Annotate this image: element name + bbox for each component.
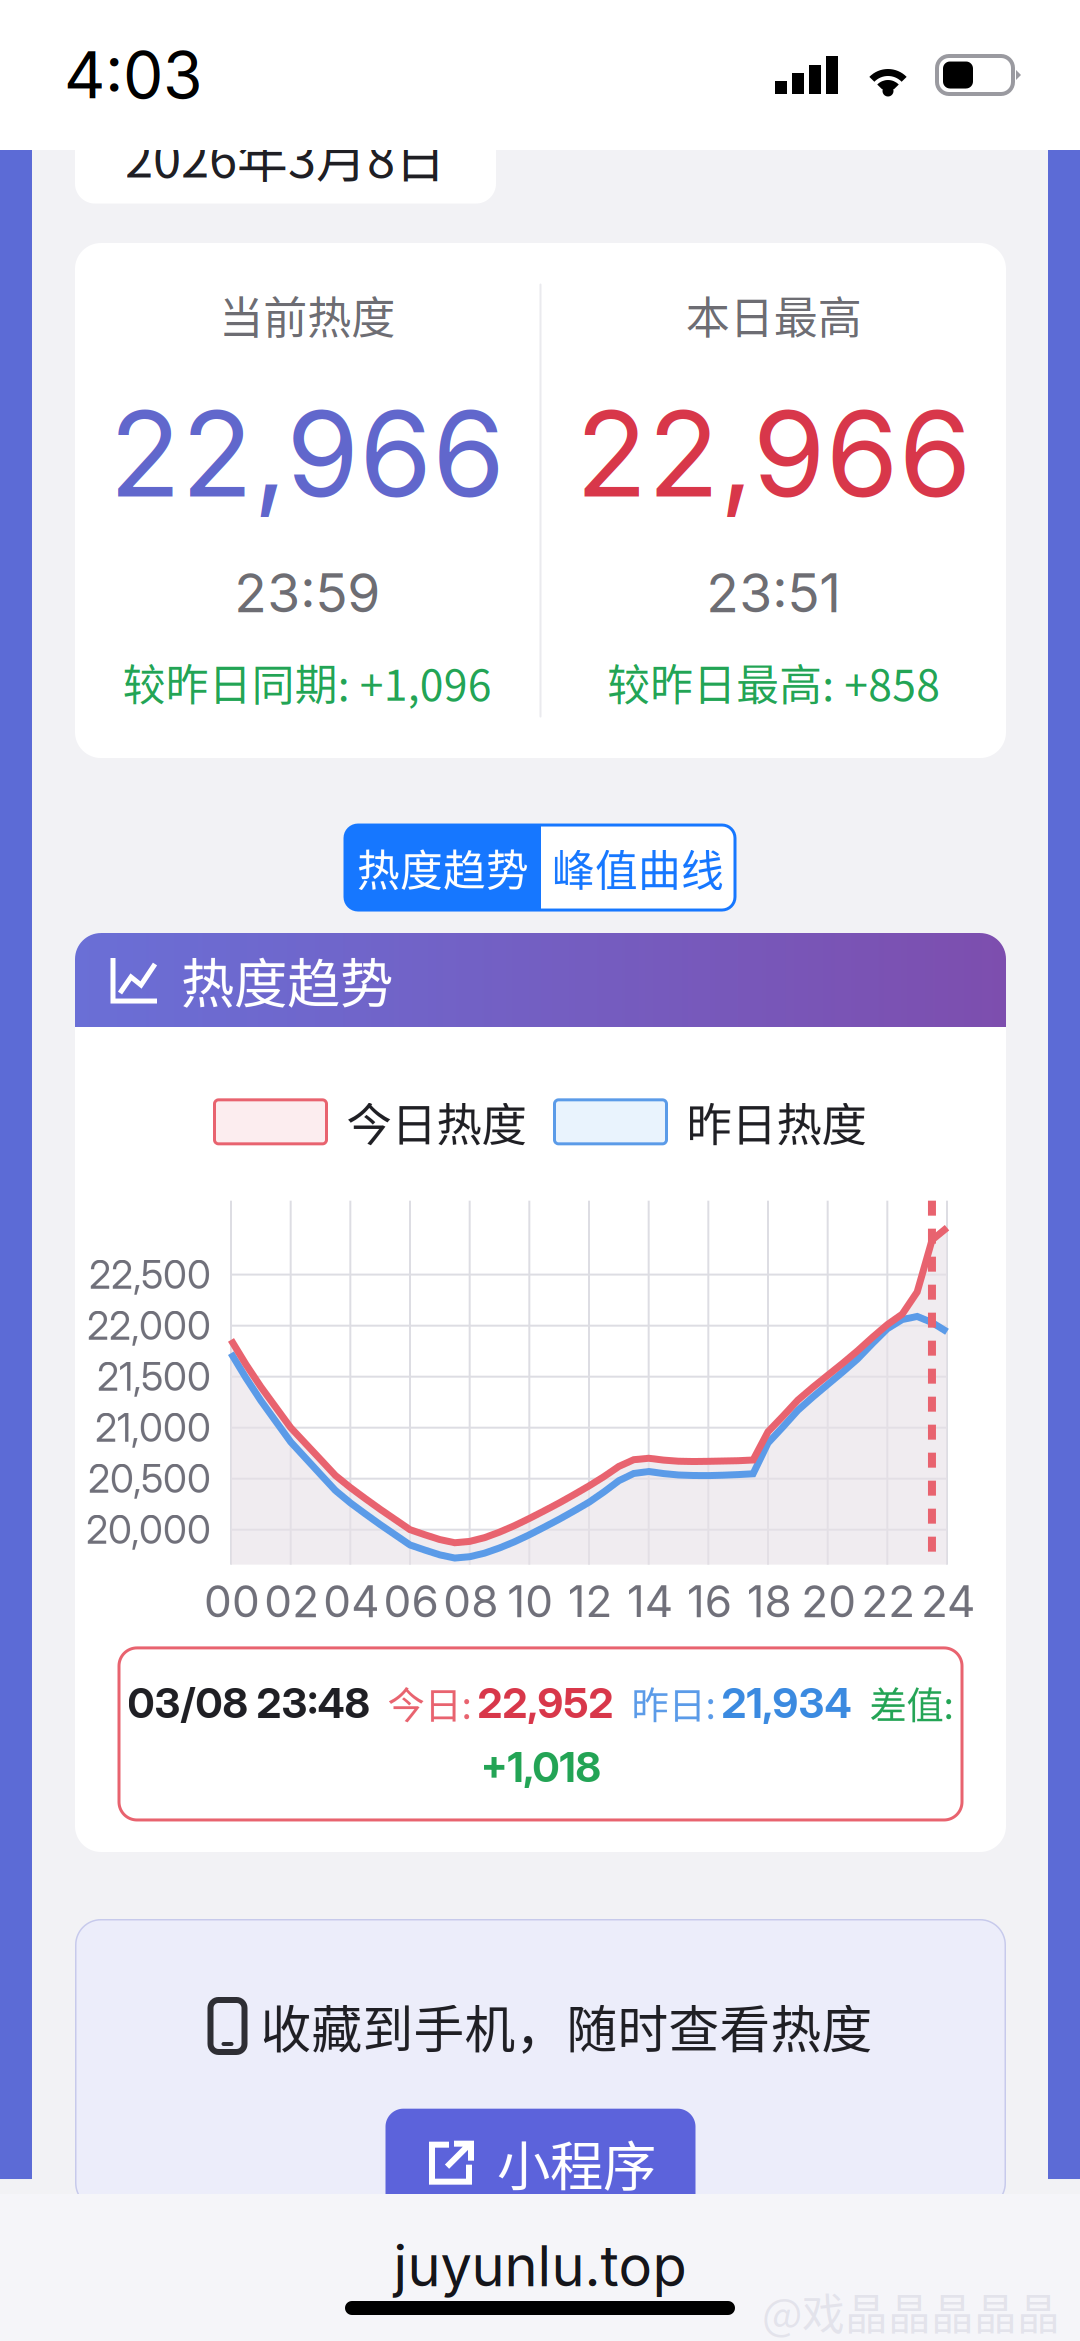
staticText: 22,000 bbox=[87, 1302, 211, 1349]
staticText: 21,500 bbox=[97, 1353, 211, 1400]
staticText: 较昨日最高: +858 bbox=[607, 651, 940, 713]
staticText: 22,952 bbox=[477, 1678, 613, 1728]
staticText: @戏晶晶晶晶晶 bbox=[762, 2281, 1060, 2341]
staticText: 4:03 bbox=[64, 36, 203, 114]
staticText: 20,000 bbox=[86, 1506, 211, 1553]
staticText: 04 bbox=[323, 1575, 379, 1628]
staticText: 02 bbox=[264, 1575, 319, 1628]
staticText: 收藏到手机，随时查看热度 bbox=[260, 1989, 872, 2063]
staticText: 21,000 bbox=[95, 1404, 211, 1451]
staticText: 22,966 bbox=[576, 383, 972, 525]
staticText: 10 bbox=[507, 1575, 553, 1628]
staticText: 03/08 23:48 bbox=[127, 1678, 369, 1728]
staticText: 22 bbox=[861, 1575, 915, 1628]
staticText: 20 bbox=[801, 1575, 856, 1628]
button[interactable]: 热度趋势 bbox=[345, 825, 541, 910]
staticText: 本日最高 bbox=[686, 283, 862, 347]
staticText: 今日热度 bbox=[346, 1089, 526, 1155]
staticText: 差值: bbox=[869, 1676, 953, 1730]
staticText: 昨日: bbox=[631, 1676, 715, 1730]
staticText: 22,966 bbox=[109, 383, 505, 525]
staticText: 14 bbox=[627, 1575, 673, 1628]
staticText: 小程序 bbox=[497, 2124, 656, 2201]
staticText: 22,500 bbox=[89, 1251, 211, 1298]
staticText: 热度趋势 bbox=[357, 837, 529, 898]
button[interactable]: 小程序 bbox=[385, 2109, 695, 2217]
staticText: 24 bbox=[921, 1575, 975, 1628]
staticText: 21,934 bbox=[721, 1678, 851, 1728]
staticText: 峰值曲线 bbox=[552, 837, 724, 898]
staticText: 热度趋势 bbox=[181, 941, 393, 1019]
staticText: 20,500 bbox=[88, 1455, 211, 1502]
button[interactable]: 峰值曲线 bbox=[541, 825, 735, 910]
staticText: 今日: bbox=[387, 1676, 471, 1730]
staticText: 06 bbox=[383, 1575, 438, 1628]
staticText: 23:59 bbox=[234, 561, 380, 625]
staticText: 12 bbox=[567, 1575, 612, 1628]
staticText: 08 bbox=[443, 1575, 498, 1628]
staticText: juyunlu.top bbox=[393, 2232, 686, 2300]
staticText: 16 bbox=[687, 1575, 732, 1628]
staticText: 2026年3月8日 bbox=[125, 119, 446, 192]
staticText: 23:51 bbox=[706, 561, 841, 625]
staticText: 当前热度 bbox=[219, 283, 395, 347]
staticText: 18 bbox=[746, 1575, 791, 1628]
staticText: 较昨日同期: +1,096 bbox=[123, 651, 492, 713]
staticText: +1,018 bbox=[480, 1742, 600, 1792]
staticText: 00 bbox=[204, 1575, 260, 1628]
staticText: 昨日热度 bbox=[686, 1089, 866, 1155]
